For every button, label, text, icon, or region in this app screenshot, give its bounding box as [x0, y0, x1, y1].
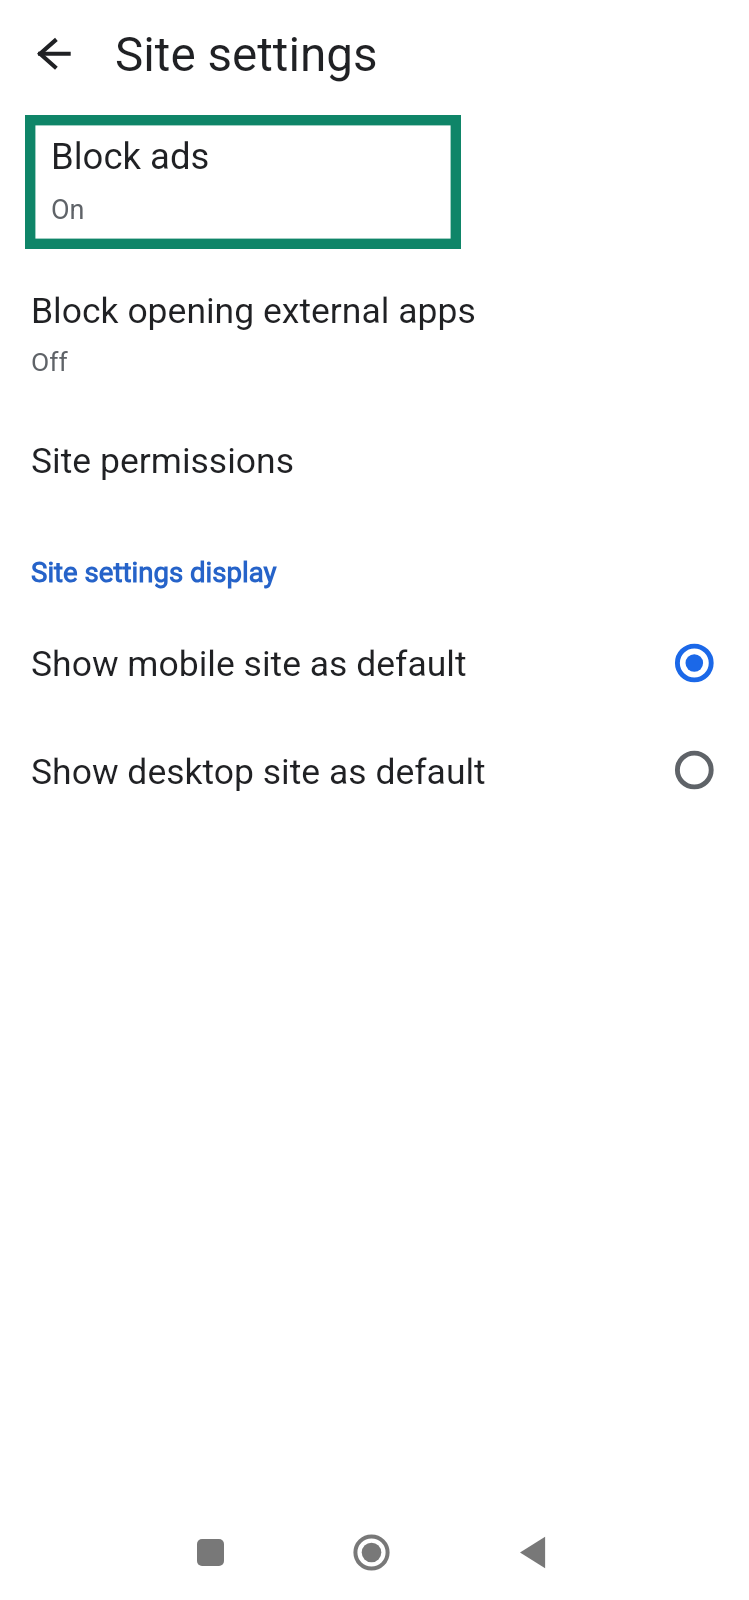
staticText: Block opening external apps: [31, 290, 476, 332]
button[interactable]: Block opening external apps: [0, 266, 749, 382]
button[interactable]: Block ads: [25, 115, 461, 249]
staticText: Site settings: [115, 27, 378, 83]
button[interactable]: Home: [311, 1492, 432, 1600]
staticText: Block ads: [51, 135, 210, 178]
button[interactable]: Show desktop site as default: [0, 728, 749, 816]
staticText: Off: [31, 346, 68, 377]
staticText: Site permissions: [31, 440, 294, 482]
button[interactable]: Navigate up: [14, 18, 86, 90]
button[interactable]: Site permissions: [0, 418, 749, 494]
button[interactable]: Recent apps: [150, 1492, 271, 1600]
staticText: Show mobile site as default: [31, 643, 467, 685]
staticText: Show desktop site as default: [31, 751, 486, 793]
button[interactable]: Back: [472, 1492, 593, 1600]
button[interactable]: Show mobile site as default: [0, 620, 749, 708]
staticText: Site settings display: [31, 556, 277, 588]
staticText: On: [51, 194, 85, 226]
